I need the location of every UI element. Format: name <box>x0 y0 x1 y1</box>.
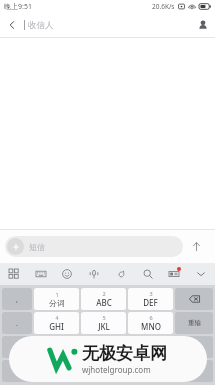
button[interactable]: 符 <box>175 336 213 358</box>
staticText: 3 <box>149 290 153 297</box>
staticText: . <box>16 319 18 328</box>
button[interactable]: Backspace <box>175 288 213 310</box>
staticText: TUV <box>96 345 112 356</box>
button[interactable]: ? <box>2 336 32 358</box>
button[interactable]: 3 <box>128 288 173 310</box>
staticText: 分词 <box>49 298 65 308</box>
button[interactable]: 7 <box>34 336 79 358</box>
button[interactable]: Emoji <box>55 263 79 285</box>
button[interactable]: Back <box>0 13 24 37</box>
button[interactable]: 6 <box>128 312 173 334</box>
staticText: JKL <box>98 321 110 332</box>
staticText: 收信人 <box>28 20 54 31</box>
button[interactable]: ! <box>2 360 32 382</box>
button[interactable]: 8 <box>81 336 126 358</box>
button[interactable]: 9 <box>128 336 173 358</box>
button[interactable]: 重输 <box>175 312 213 334</box>
button[interactable]: Add attachment <box>7 238 24 255</box>
button[interactable]: Stickers <box>162 263 186 285</box>
staticText: 5 <box>102 314 106 321</box>
staticText: 0 <box>101 365 106 377</box>
button[interactable]: 2 <box>81 288 126 310</box>
staticText: MNO <box>141 321 161 332</box>
button[interactable]: 0 <box>81 360 126 382</box>
staticText: DEF <box>143 297 158 308</box>
button[interactable]: Voice input <box>82 263 106 285</box>
staticText: ABC <box>96 297 112 308</box>
button[interactable]: Enter <box>175 360 213 382</box>
staticText: WXYZ <box>140 345 162 356</box>
staticText: 20.6K/s <box>152 2 175 11</box>
button[interactable]: Contacts <box>191 13 215 37</box>
button[interactable]: Search <box>136 263 160 285</box>
staticText: 6 <box>149 314 153 321</box>
staticText: 晚上9:51 <box>4 2 32 12</box>
button[interactable]: 5 <box>81 312 126 334</box>
staticText: wjhotelgroup.com <box>82 364 151 375</box>
button[interactable]: , <box>2 288 32 310</box>
staticText: , <box>16 295 18 304</box>
staticText: 8 <box>102 338 106 345</box>
staticText: PQRS <box>46 345 67 356</box>
staticText: 短信 <box>29 242 45 252</box>
staticText: 无极安卓网 <box>82 343 167 364</box>
staticText: 1 <box>55 291 59 298</box>
button[interactable]: Add attachment <box>5 236 183 257</box>
button[interactable]: 4 <box>34 312 79 334</box>
button[interactable]: Clipboard <box>109 263 133 285</box>
button[interactable]: 中 <box>34 360 79 382</box>
staticText: 重输 <box>188 319 201 327</box>
staticText: 4 <box>55 314 59 321</box>
staticText: 空格 <box>144 367 157 375</box>
staticText: 2 <box>102 290 106 297</box>
button[interactable]: Hide keyboard <box>189 263 213 285</box>
staticText: GHI <box>49 321 64 332</box>
button[interactable]: 空格 <box>128 360 173 382</box>
button[interactable]: Keyboard <box>29 263 53 285</box>
button[interactable]: Panel <box>2 263 26 285</box>
staticText: 中 <box>53 367 60 375</box>
button[interactable]: Send <box>183 233 210 260</box>
button[interactable]: 1 <box>34 288 79 310</box>
